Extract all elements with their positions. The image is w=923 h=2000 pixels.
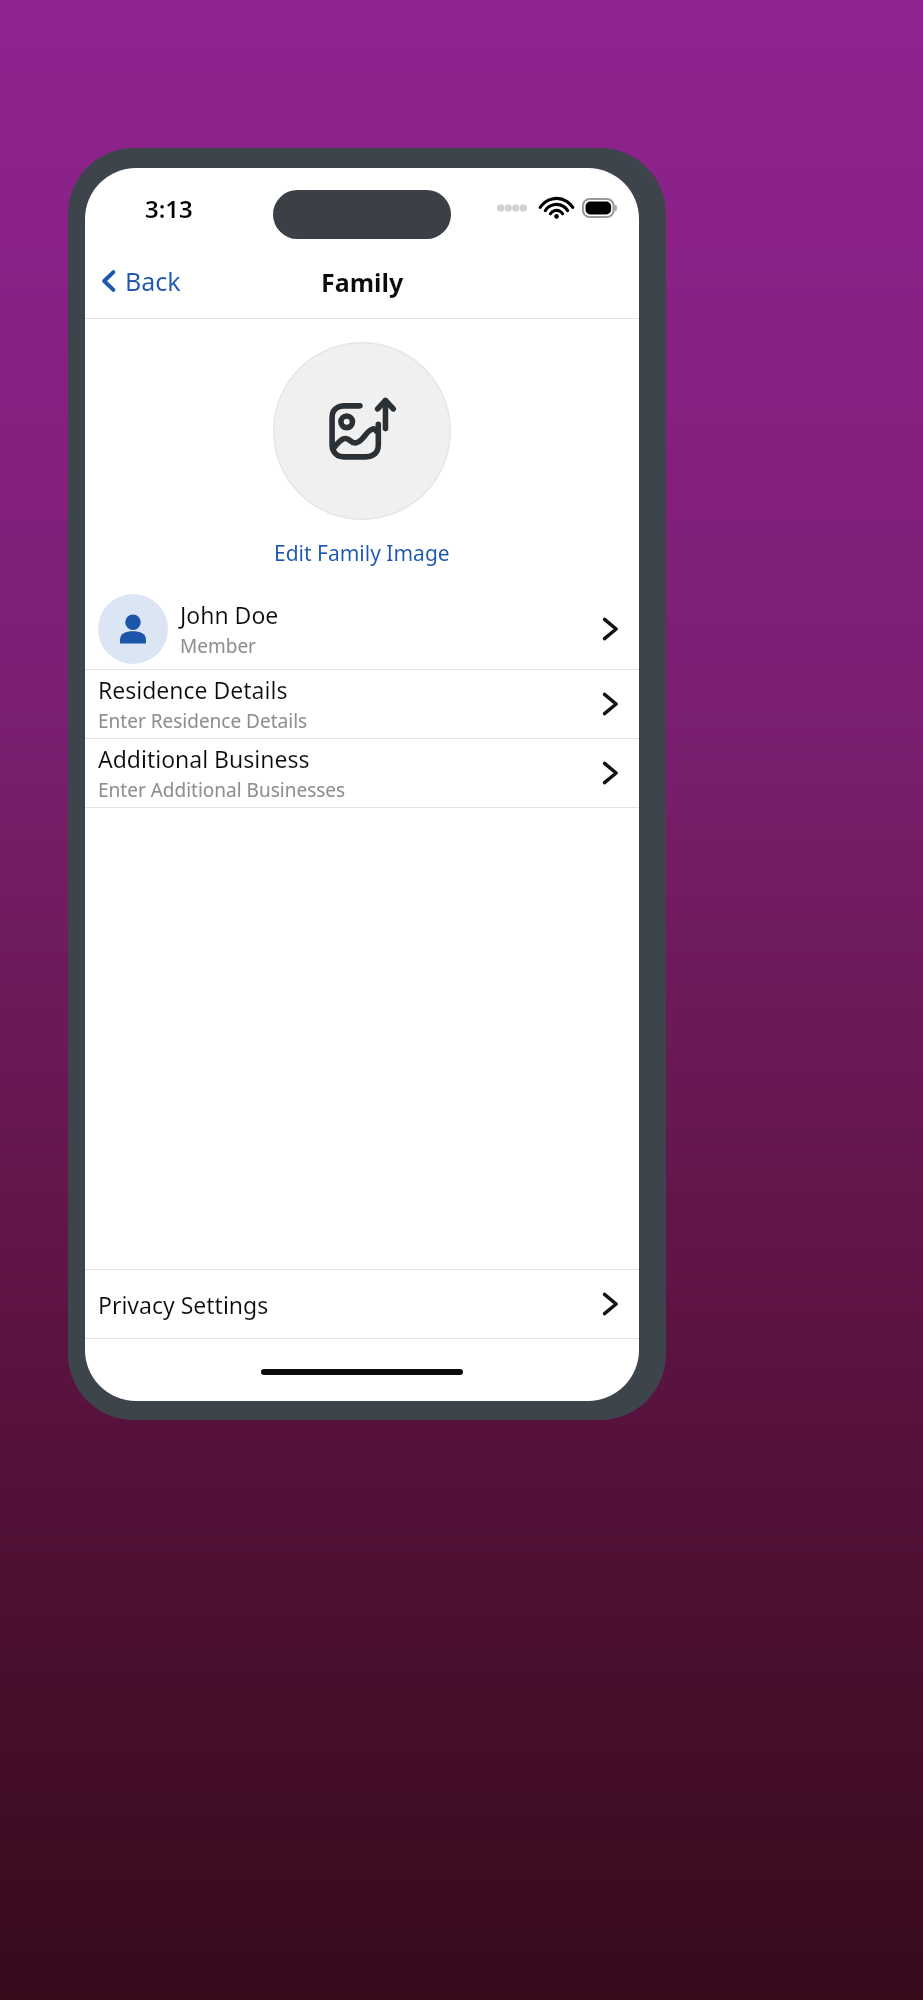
staticText: Privacy Settings xyxy=(98,1289,599,1320)
button[interactable]: Privacy Settings xyxy=(85,1270,639,1338)
staticText: Enter Residence Details xyxy=(98,708,308,734)
staticText: Residence Details xyxy=(98,674,288,705)
staticText: 3:13 xyxy=(145,192,193,225)
staticText: Member xyxy=(180,633,256,659)
staticText: Edit Family Image xyxy=(274,539,450,568)
button[interactable]: Back xyxy=(91,258,189,304)
staticText: Enter Additional Businesses xyxy=(98,777,346,803)
staticText: John Doe xyxy=(180,599,279,630)
button[interactable]: Edit Family Image xyxy=(268,537,456,570)
staticText: Family xyxy=(321,265,404,299)
button[interactable]: Residence Details xyxy=(85,670,639,738)
button[interactable]: Additional Business xyxy=(85,739,639,807)
button[interactable]: John Doe xyxy=(85,588,639,669)
staticText: Back xyxy=(125,264,181,298)
staticText: Additional Business xyxy=(98,743,310,774)
button[interactable]: Upload family image xyxy=(273,342,451,520)
